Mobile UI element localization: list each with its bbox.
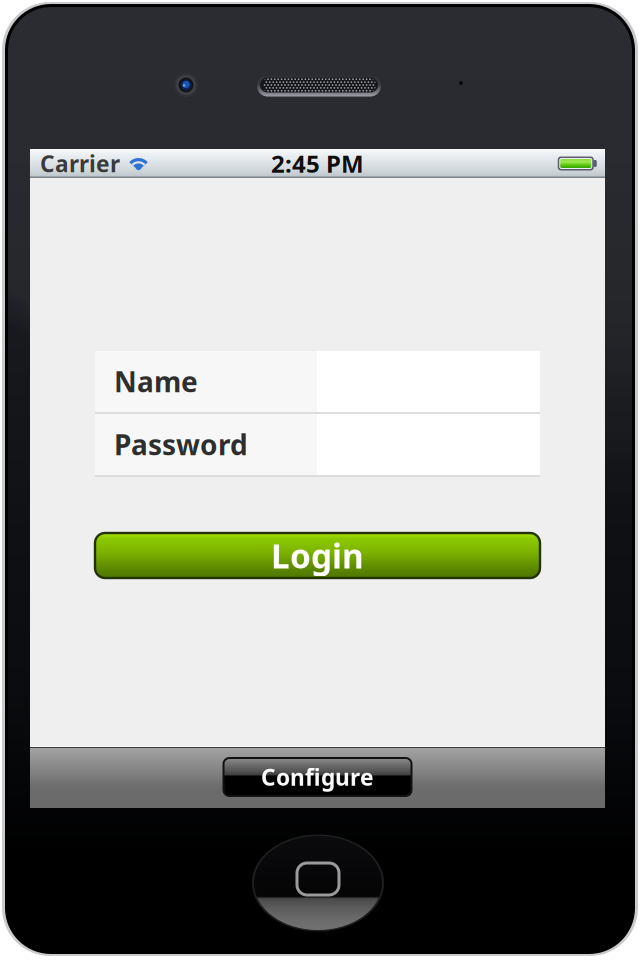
- button[interactable]: Login: [95, 533, 540, 578]
- staticText: Carrier: [40, 148, 120, 178]
- button[interactable]: Password: [95, 414, 540, 475]
- staticText: Login: [271, 533, 364, 578]
- staticText: Name: [114, 363, 198, 400]
- button[interactable]: Name: [95, 351, 540, 412]
- staticText: Configure: [261, 762, 374, 792]
- staticText: 2:45 PM: [271, 148, 364, 179]
- button[interactable]: Configure: [223, 758, 411, 796]
- staticText: Password: [114, 426, 248, 463]
